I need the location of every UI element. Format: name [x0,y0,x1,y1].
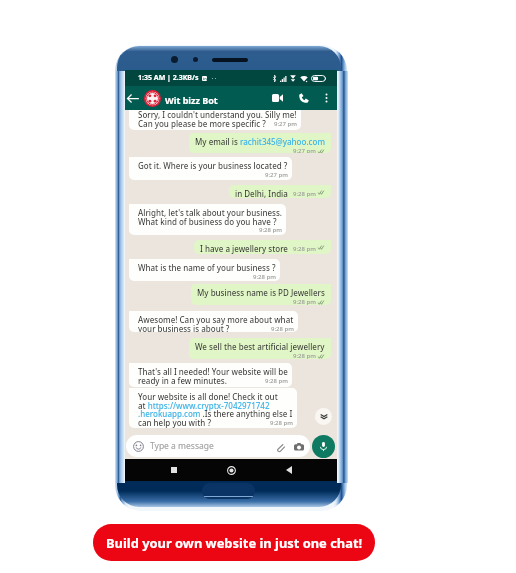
staticText: 9:28 pm [293,298,316,305]
button[interactable]: More options [321,91,332,105]
staticText: .herokuapp.com .Is there anything else I [138,408,293,419]
button[interactable]: We sell the best artificial jewellery [189,338,331,359]
button[interactable]: My business name is PD Jewellers [191,284,331,305]
staticText: 9:28 pm [293,190,316,198]
staticText: 9:28 pm [293,245,316,253]
staticText: What is the name of your business ? [138,262,276,273]
staticText: in [203,76,207,81]
staticText: Alright, let's talk about your business. [138,207,282,218]
button[interactable]: Back [127,91,139,105]
staticText: 1:35 AM | 2.3KB/s [138,73,199,83]
staticText: in Delhi, India [235,188,288,198]
staticText: at https://www.cryptx-7042971742 [138,400,270,411]
staticText: 9:27 pm [265,171,288,179]
button[interactable]: Home [222,461,240,479]
button[interactable]: Back [280,461,298,479]
button[interactable]: Sorry, I couldn't understand you. Silly … [129,110,301,130]
staticText: can help you with ? [138,417,211,428]
staticText: My email is rachit345@yahoo.com [195,136,325,147]
button[interactable]: Type a message [126,435,310,457]
button[interactable]: Build your own website in just one chat! [93,524,375,561]
staticText: 9:27 pm [293,147,316,153]
button[interactable]: Call [297,91,310,105]
button[interactable]: What is the name of your business ? [129,259,280,281]
staticText: 9:28 pm [270,419,293,427]
staticText: 9:28 pm [259,226,282,234]
staticText: your business is about ? [138,323,230,332]
button[interactable]: I have a jewellery store [194,240,331,254]
staticText: Type a message [150,440,214,452]
staticText: We sell the best artificial jewellery [195,341,325,352]
staticText: Wit bizz Bot [165,94,218,106]
button[interactable]: Recents [165,461,183,479]
button[interactable]: My email is rachit345@yahoo.com [189,133,331,153]
staticText: Can you please be more specific ? [138,118,266,129]
staticText: That's all I needed! Your website will b… [138,366,288,377]
staticText: What kind of business do you have ? [138,216,277,227]
button[interactable]: in Delhi, India [229,185,331,198]
button[interactable]: Camera [293,441,304,452]
staticText: Awesome! Can you say more about what [138,314,294,325]
staticText: Build your own website in just one chat! [106,534,363,552]
button[interactable]: Alright, let's talk about your business. [129,204,286,235]
staticText: Your website is all done! Check it out [138,391,278,402]
staticText: Got it. Where is your business located ? [138,160,288,171]
staticText: ready in a few minutes. [138,375,227,386]
staticText: 9:28 pm [253,273,276,281]
staticText: 9:28 pm [271,325,294,332]
button[interactable]: Voice message [312,435,335,458]
staticText: 9:28 pm [293,352,316,359]
button[interactable]: Video call [270,91,284,105]
staticText: 9:28 pm [265,377,288,385]
staticText: My business name is PD Jewellers [197,287,325,298]
staticText: Sorry, I couldn't understand you. Silly … [138,110,297,120]
button[interactable]: Awesome! Can you say more about what [129,311,298,332]
staticText: I have a jewellery store [200,243,288,254]
button[interactable]: Got it. Where is your business located ? [129,157,292,180]
staticText: 9:27 pm [274,120,297,128]
button[interactable]: That's all I needed! Your website will b… [129,363,292,387]
button[interactable]: Scroll to bottom [315,408,332,425]
button[interactable]: Your website is all done! Check it out [129,388,297,428]
button[interactable]: Attach [274,441,285,452]
